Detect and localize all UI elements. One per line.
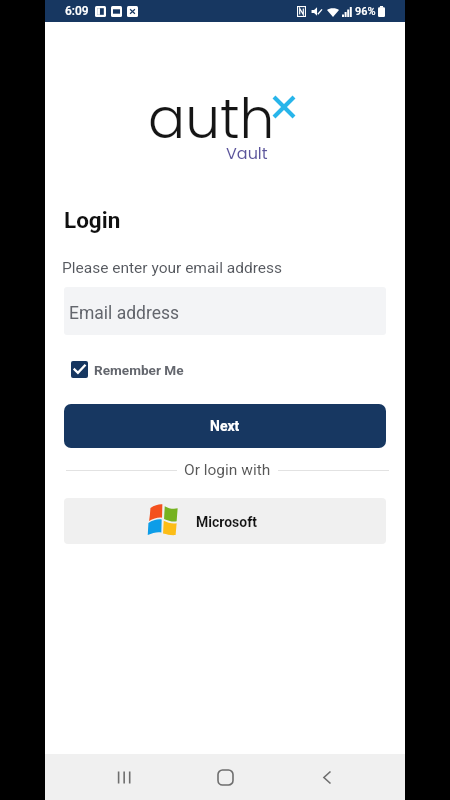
- staticText: 6:09: [65, 4, 89, 18]
- button[interactable]: Microsoft: [64, 498, 386, 544]
- button[interactable]: Back: [303, 754, 351, 800]
- staticText: Or login with: [184, 461, 271, 479]
- button[interactable]: Email address: [64, 287, 386, 335]
- button[interactable]: Next: [64, 404, 386, 448]
- staticText: Vault: [226, 142, 268, 164]
- staticText: Login: [64, 207, 121, 233]
- staticText: Please enter your email address: [62, 259, 282, 277]
- staticText: 96%: [355, 5, 376, 18]
- staticText: Next: [210, 418, 240, 434]
- staticText: auth: [148, 80, 275, 157]
- staticText: Remember Me: [94, 362, 184, 378]
- button[interactable]: Recent apps: [99, 754, 147, 800]
- staticText: Email address: [69, 303, 180, 324]
- staticText: Microsoft: [196, 514, 257, 530]
- button[interactable]: Home: [201, 754, 249, 800]
- button[interactable]: Remember Me: [71, 361, 184, 378]
